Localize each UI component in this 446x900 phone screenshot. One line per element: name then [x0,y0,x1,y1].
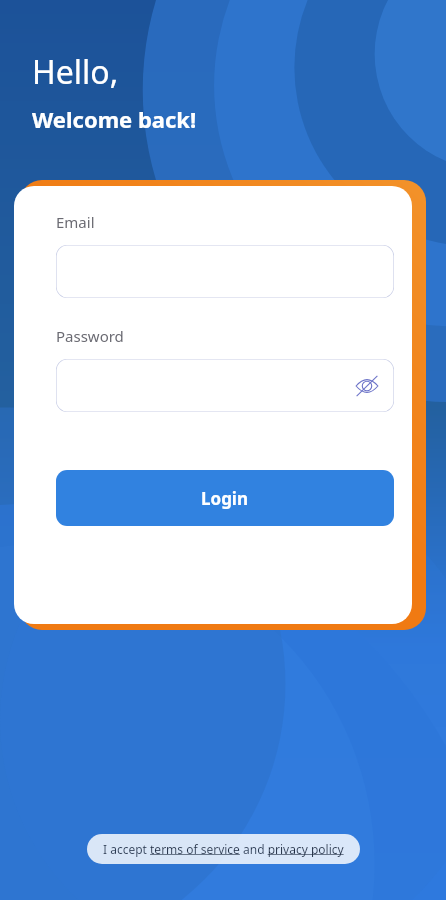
staticText: Password [56,326,124,346]
button[interactable]: Login [56,470,394,526]
staticText: Welcome back! [32,104,197,134]
button[interactable] [56,245,394,298]
staticText: Login [201,487,249,510]
staticText: Hello, [32,50,119,94]
button[interactable]: Show password [56,359,394,412]
button[interactable]: I accept terms of service and privacy po… [87,834,360,864]
button[interactable]: Show password [354,373,380,399]
staticText: Email [56,212,95,232]
staticText: I accept terms of service and privacy po… [103,841,344,857]
